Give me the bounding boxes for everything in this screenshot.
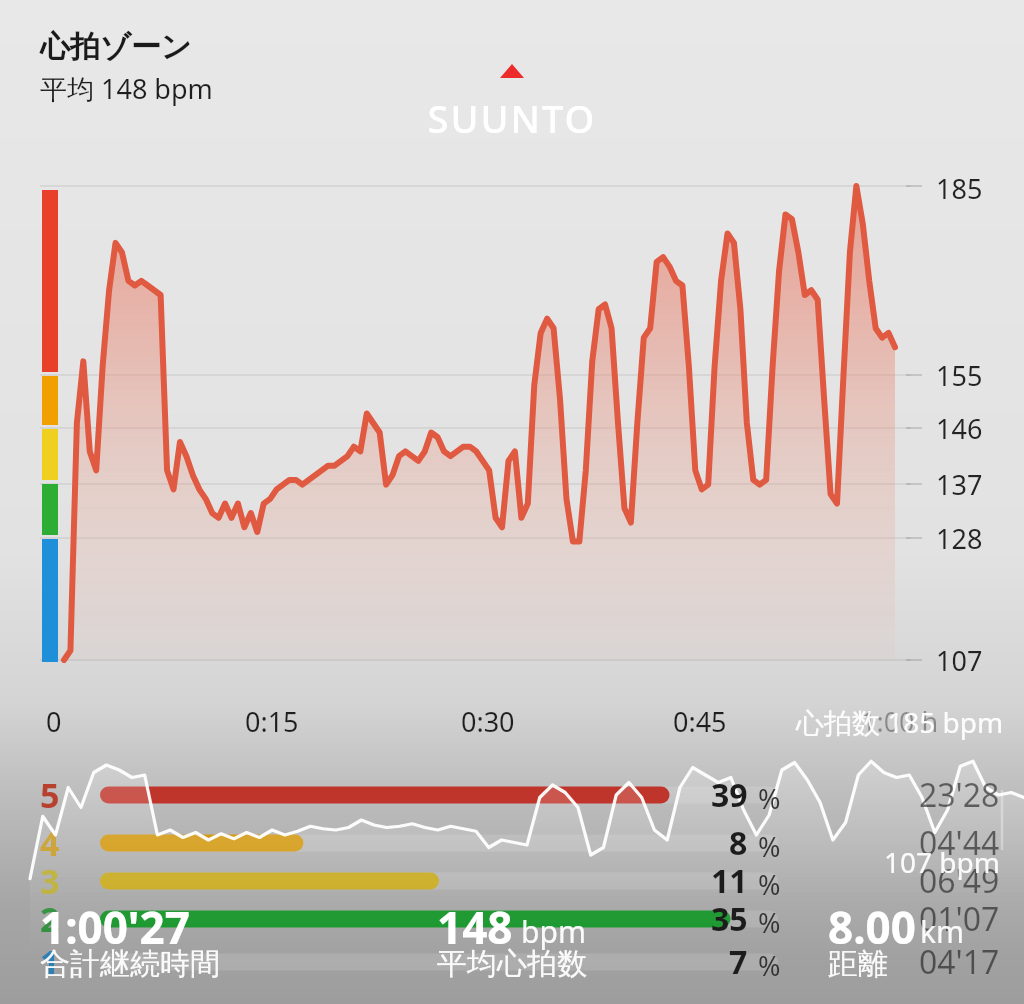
button[interactable]: Heart rate zone summary [0, 0, 1024, 1004]
